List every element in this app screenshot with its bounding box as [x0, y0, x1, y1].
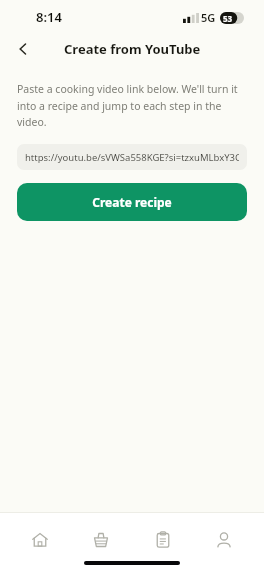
- staticText: 8:14: [36, 8, 62, 26]
- staticText: 5G: [201, 10, 216, 25]
- staticText: Create recipe: [92, 194, 172, 210]
- button[interactable]: Profile: [202, 525, 246, 555]
- button[interactable]: Recipes: [141, 525, 185, 555]
- staticText: https://youtu.be/sVWSa558KGE?si=tzxuMLbx…: [25, 151, 239, 164]
- staticText: Create from YouTube: [64, 40, 201, 58]
- button[interactable]: Home: [18, 525, 62, 555]
- button[interactable]: https://youtu.be/sVWSa558KGE?si=tzxuMLbx…: [17, 144, 247, 170]
- button[interactable]: Create recipe: [17, 183, 247, 221]
- button[interactable]: Shopping list: [79, 525, 123, 555]
- staticText: 53: [223, 13, 233, 24]
- button[interactable]: Back: [8, 34, 38, 64]
- staticText: Paste a cooking video link below. We'll …: [17, 82, 247, 129]
